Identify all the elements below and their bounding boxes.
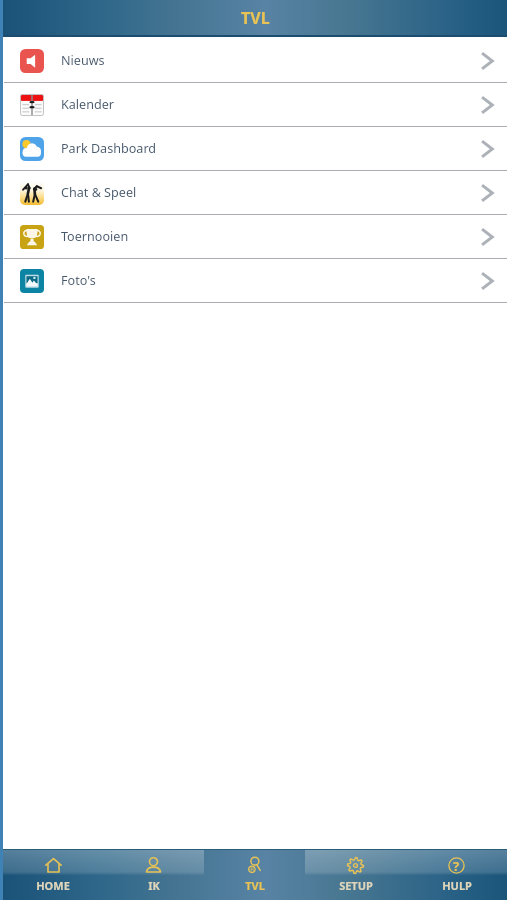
button[interactable]: Chat & Speel bbox=[3, 171, 507, 215]
staticText: Nieuws bbox=[61, 52, 105, 69]
staticText: Foto's bbox=[61, 272, 96, 289]
staticText: Toernooien bbox=[61, 228, 129, 245]
button[interactable]: Nieuws bbox=[3, 39, 507, 83]
button[interactable]: Foto's bbox=[3, 259, 507, 303]
button[interactable]: Kalender bbox=[3, 83, 507, 127]
button[interactable]: Ik bbox=[103, 849, 204, 900]
staticText: TVL bbox=[241, 7, 270, 29]
button[interactable]: Park Dashboard bbox=[3, 127, 507, 171]
button[interactable]: Home bbox=[3, 849, 103, 900]
staticText: Chat & Speel bbox=[61, 184, 137, 201]
staticText: HOME bbox=[36, 878, 70, 893]
staticText: Kalender bbox=[61, 96, 115, 113]
button[interactable]: TVL bbox=[204, 849, 305, 900]
staticText: ? bbox=[453, 857, 460, 875]
staticText: HULP bbox=[442, 878, 472, 893]
button[interactable]: Toernooien bbox=[3, 215, 507, 259]
staticText: TVL bbox=[245, 878, 265, 893]
staticText: SETUP bbox=[339, 878, 373, 893]
staticText: Park Dashboard bbox=[61, 140, 157, 157]
staticText: IK bbox=[148, 878, 160, 893]
button[interactable]: Setup bbox=[305, 849, 406, 900]
button[interactable]: Hulp bbox=[406, 849, 507, 900]
